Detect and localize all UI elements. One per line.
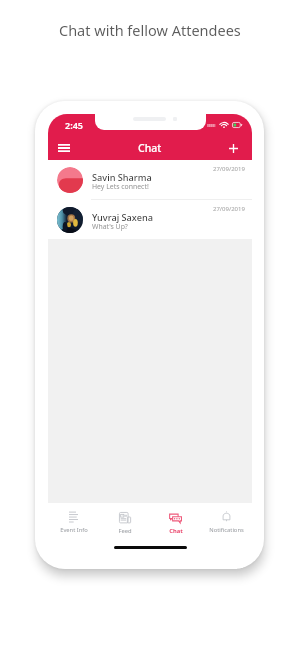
staticText: Notifications bbox=[209, 526, 244, 534]
staticText: Savin Sharma bbox=[92, 171, 152, 184]
staticText: Chat with fellow Attendees bbox=[59, 20, 241, 40]
button[interactable]: Chat bbox=[150, 503, 201, 539]
button[interactable]: Savin Sharma bbox=[48, 160, 252, 199]
staticText: 2:45 bbox=[65, 119, 83, 131]
button[interactable]: Feed bbox=[99, 503, 150, 539]
button[interactable]: Menu bbox=[53, 137, 75, 159]
staticText: Chat bbox=[169, 527, 183, 535]
staticText: 27/09/2019 bbox=[213, 205, 245, 213]
button[interactable]: Event Info bbox=[48, 503, 99, 539]
staticText: Chat bbox=[138, 141, 162, 155]
staticText: What's Up? bbox=[92, 222, 128, 231]
staticText: 27/09/2019 bbox=[213, 165, 245, 173]
staticText: Yuvraj Saxena bbox=[92, 211, 153, 224]
button[interactable]: Notifications bbox=[201, 503, 252, 539]
staticText: Event Info bbox=[60, 526, 88, 534]
button[interactable]: Yuvraj Saxena bbox=[48, 200, 252, 239]
staticText: Hey Lets connect! bbox=[92, 182, 149, 191]
button[interactable]: New chat bbox=[222, 137, 244, 159]
staticText: Feed bbox=[118, 527, 132, 535]
